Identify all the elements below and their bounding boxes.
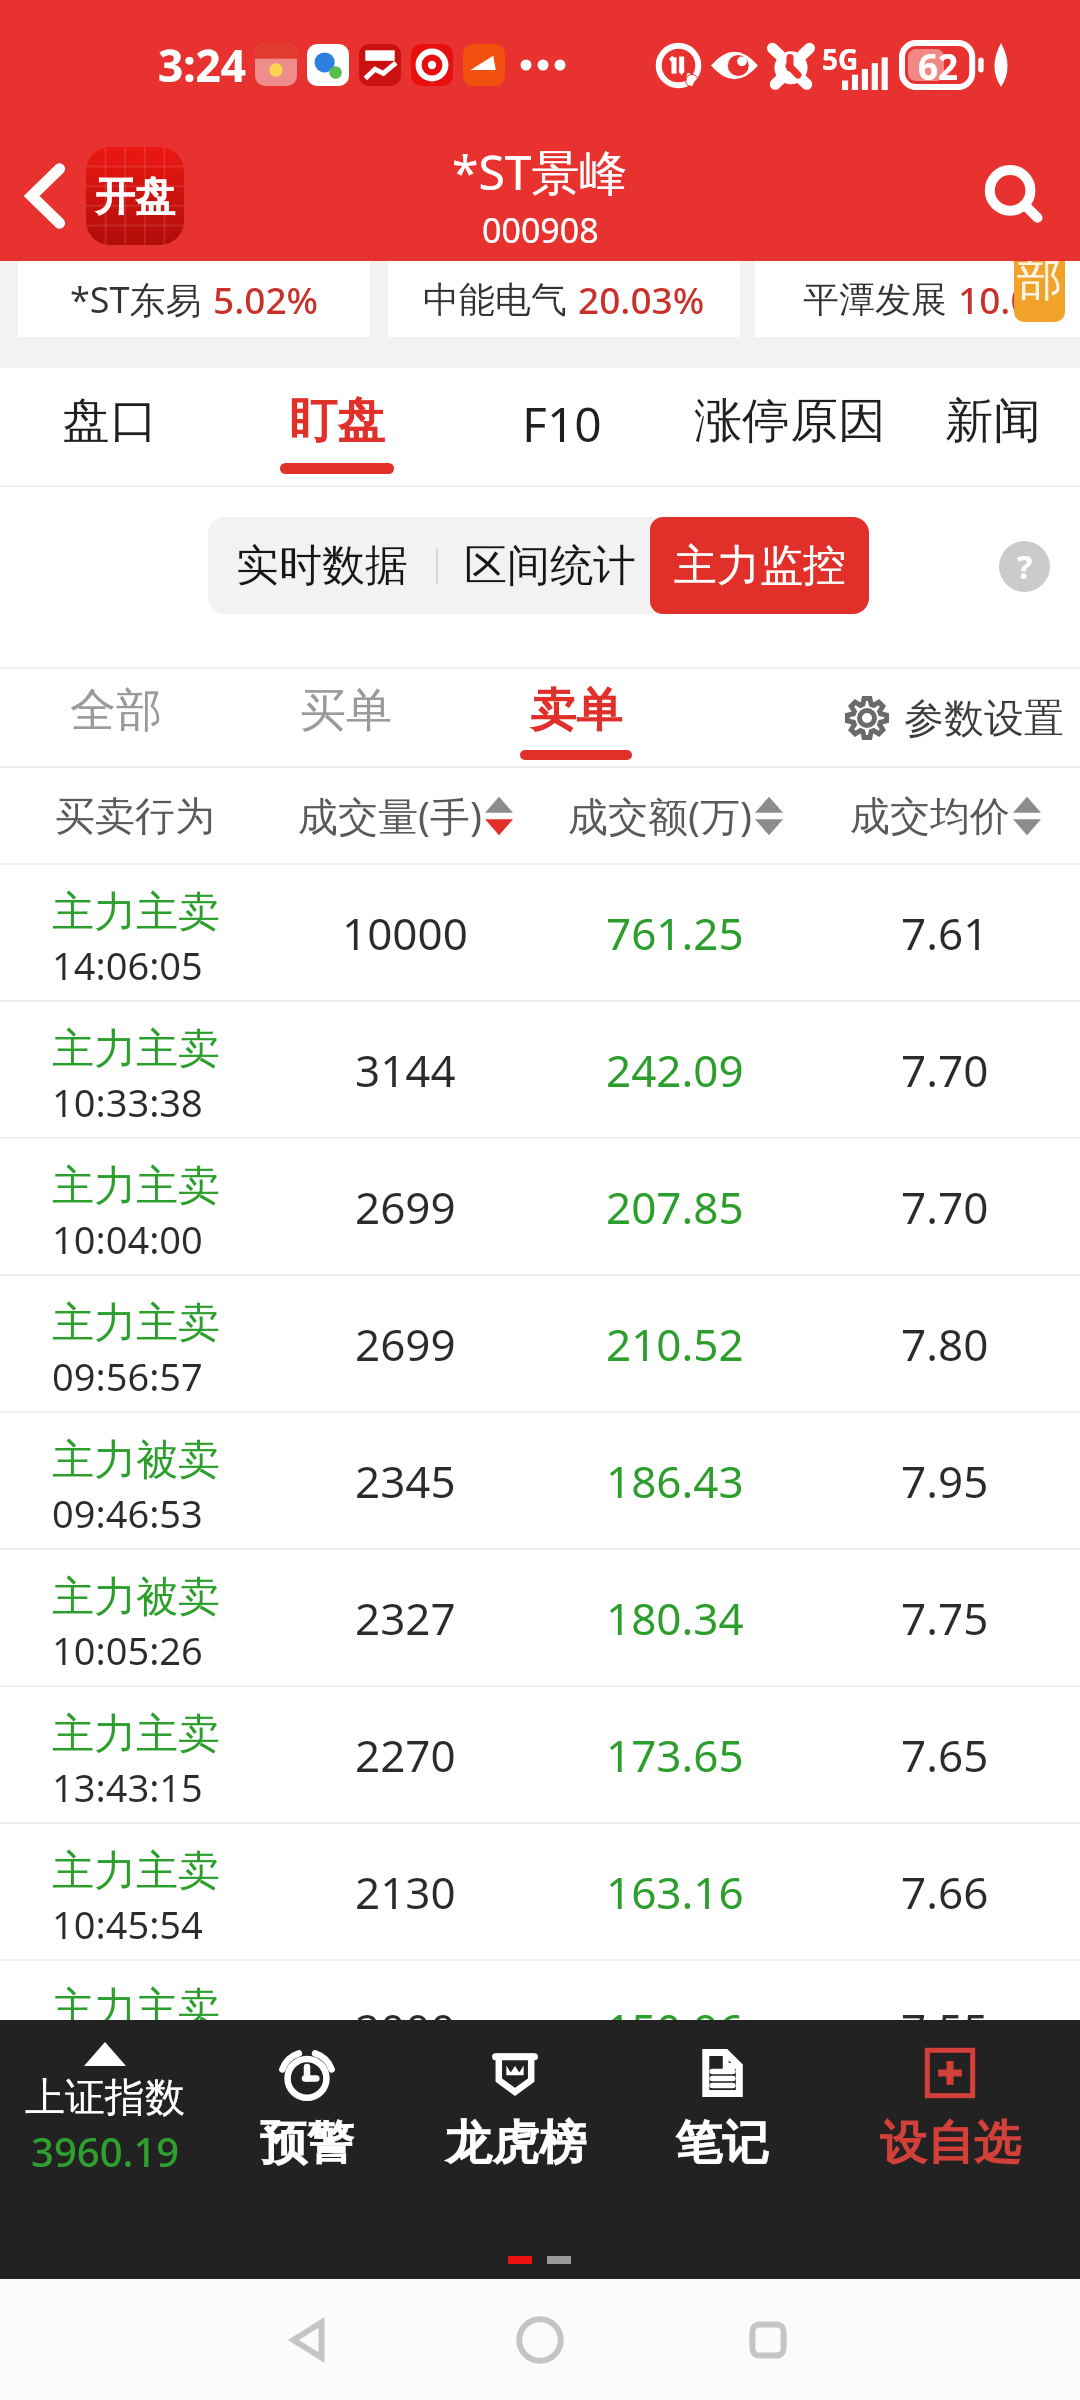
staticText: 上证指数 <box>25 2072 185 2122</box>
staticText: 10:04:00 <box>52 1213 203 1265</box>
staticText: 173.65 <box>606 1725 744 1785</box>
button[interactable]: F10 <box>457 368 667 487</box>
staticText: 卖单 <box>530 682 622 740</box>
staticText: 000908 <box>482 207 599 253</box>
staticText: 主力被卖 <box>52 1434 220 1487</box>
staticText: ? <box>1017 545 1033 589</box>
button[interactable]: 新闻 <box>905 368 1080 487</box>
button[interactable]: 实时数据 <box>208 517 436 614</box>
staticText: 全部 <box>70 682 162 740</box>
staticText: 部 <box>1017 261 1062 309</box>
staticText: 10.0 <box>958 274 1032 324</box>
button[interactable]: 主力监控 <box>650 517 869 614</box>
staticText: 龙虎榜 <box>445 2114 586 2173</box>
staticText: 761.25 <box>606 903 744 963</box>
button[interactable]: 主力主卖 <box>0 1961 1080 2096</box>
staticText: *ST东易 <box>70 275 202 324</box>
staticText: 2000 <box>355 1999 456 2059</box>
button[interactable]: 龙虎榜 <box>415 2046 615 2173</box>
button[interactable]: 成交量(手) <box>270 768 540 863</box>
button[interactable]: 参数设置 <box>846 669 1064 766</box>
button[interactable]: 主力被卖 <box>0 1550 1080 1685</box>
staticText: 2270 <box>355 1725 456 1785</box>
button[interactable]: 涨停原因 <box>685 368 895 487</box>
button[interactable]: 成交额(万) <box>540 768 810 863</box>
staticText: 实时数据 <box>236 539 408 593</box>
staticText: 7.65 <box>901 1725 989 1785</box>
staticText: 20.03% <box>578 274 705 324</box>
button[interactable]: 预警 <box>207 2046 407 2173</box>
button[interactable]: 盯盘 <box>232 368 442 487</box>
staticText: 主力主卖 <box>52 1708 220 1761</box>
button[interactable]: Back <box>0 130 200 261</box>
staticText: 09:46:53 <box>52 1487 203 1539</box>
button[interactable]: 设自选 <box>850 2046 1050 2173</box>
button[interactable]: 主力主卖 <box>0 1139 1080 1274</box>
button[interactable]: Search <box>949 130 1080 261</box>
button[interactable]: 主力主卖 <box>0 1276 1080 1411</box>
staticText: 7.70 <box>901 1177 989 1237</box>
button[interactable]: 主力被卖 <box>0 1413 1080 1548</box>
staticText: 2699 <box>355 1177 456 1237</box>
staticText: 主力主卖 <box>52 1845 220 1898</box>
staticText: 242.09 <box>606 1040 744 1100</box>
staticText: 盘口 <box>62 391 158 451</box>
staticText: 10000 <box>342 903 468 963</box>
staticText: 207.85 <box>606 1177 744 1237</box>
staticText: 5.02% <box>213 274 319 324</box>
staticText: 7.55 <box>901 1999 989 2059</box>
staticText: 新闻 <box>945 391 1041 451</box>
staticText: 3144 <box>355 1040 456 1100</box>
staticText: 10:15:22 <box>52 2035 203 2087</box>
button[interactable]: Sector <box>1014 261 1065 322</box>
staticText: 笔记 <box>675 2114 769 2173</box>
button[interactable]: 中能电气 <box>388 261 740 337</box>
staticText: 成交均价 <box>850 791 1010 841</box>
staticText: 3960.19 <box>31 2124 180 2178</box>
button[interactable]: 卖单 <box>484 669 668 766</box>
button[interactable]: 平潭发展 <box>755 261 1080 337</box>
staticText: 180.34 <box>606 1588 744 1648</box>
button[interactable]: 买单 <box>254 669 438 766</box>
button[interactable]: Back <box>238 2279 378 2400</box>
staticText: 区间统计 <box>464 539 636 593</box>
button[interactable]: 主力主卖 <box>0 1824 1080 1959</box>
staticText: 150.96 <box>606 1999 744 2059</box>
staticText: 成交量(手) <box>298 788 482 843</box>
staticText: 主力主卖 <box>52 886 220 939</box>
button[interactable]: 主力主卖 <box>0 1687 1080 1822</box>
button[interactable]: Home <box>470 2279 610 2400</box>
staticText: 2327 <box>355 1588 456 1648</box>
button[interactable]: 上证指数 <box>5 2042 205 2178</box>
staticText: 主力主卖 <box>52 1297 220 1350</box>
staticText: 主力监控 <box>674 539 846 593</box>
staticText: 10:33:38 <box>52 1076 203 1128</box>
staticText: 预警 <box>260 2114 354 2173</box>
staticText: 成交额(万) <box>568 788 752 843</box>
staticText: 09:56:57 <box>52 1350 203 1402</box>
staticText: 163.16 <box>606 1862 744 1922</box>
staticText: 买单 <box>300 682 392 740</box>
staticText: 主力主卖 <box>52 1023 220 1076</box>
button[interactable]: 笔记 <box>622 2046 822 2173</box>
staticText: *ST景峰 <box>452 139 628 205</box>
button[interactable]: 主力主卖 <box>0 1002 1080 1137</box>
staticText: 7.75 <box>901 1588 989 1648</box>
button[interactable]: Recents <box>698 2279 838 2400</box>
button[interactable]: *ST东易 <box>18 261 370 337</box>
staticText: 主力主卖 <box>52 1982 220 2035</box>
staticText: 62 <box>918 43 959 87</box>
staticText: 买卖行为 <box>55 791 215 841</box>
staticText: 主力被卖 <box>52 1571 220 1624</box>
staticText: 中能电气 <box>423 277 567 322</box>
button[interactable]: 成交均价 <box>810 768 1080 863</box>
staticText: 设自选 <box>880 2114 1021 2173</box>
button[interactable]: 盘口 <box>5 368 215 487</box>
staticText: 7.66 <box>901 1862 989 1922</box>
staticText: 5G <box>822 40 859 78</box>
staticText: 7.95 <box>901 1451 989 1511</box>
button[interactable]: Help <box>999 541 1050 592</box>
button[interactable]: 主力主卖 <box>0 865 1080 1000</box>
button[interactable]: 区间统计 <box>438 517 650 614</box>
button[interactable]: 全部 <box>24 669 208 766</box>
